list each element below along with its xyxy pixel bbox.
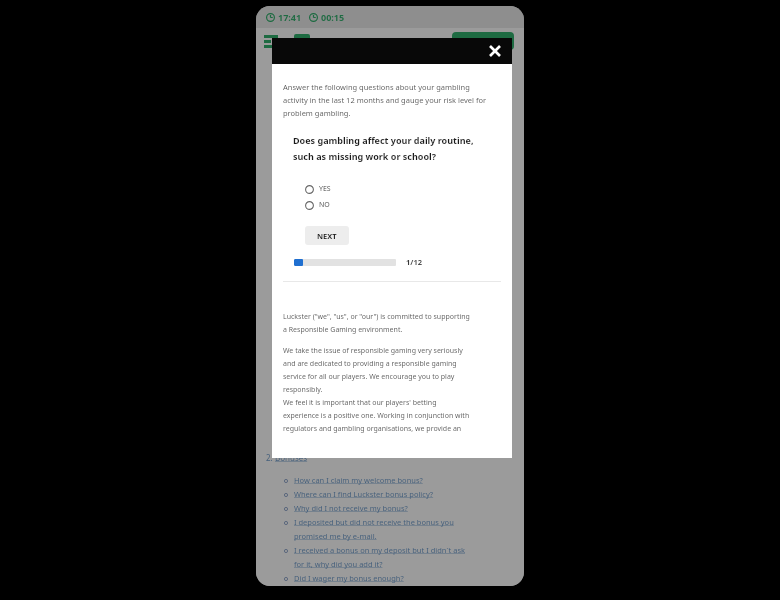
button[interactable]: Where can I find Luckster bonus policy? [266,489,514,499]
staticText: service for all our players. We encourag… [283,372,455,382]
button[interactable]: promised me by e-mail. [266,531,514,541]
staticText: 00:15 [321,11,345,23]
staticText: Answer the following questions about you… [283,82,470,92]
staticText: Did I wager my bonus enough? [294,573,404,583]
staticText: 17:41 [278,11,302,23]
button[interactable]: NO [305,200,330,210]
staticText: 2. [266,452,275,463]
staticText: 1/12 [406,257,422,267]
button[interactable]: I received a bonus on my deposit but I d… [266,545,514,555]
button[interactable]: Close [486,42,504,60]
button[interactable]: How can I claim my welcome bonus? [266,475,514,485]
button[interactable]: I deposited but did not receive the bonu… [266,517,514,527]
staticText: for it, why did you add it? [294,559,383,569]
staticText: Luckster ("we", "us", or "our") is commi… [283,312,470,322]
staticText: promised me by e-mail. [294,531,377,541]
button[interactable]: Menu [264,35,280,51]
staticText: Does gambling affect your daily routine, [293,134,474,146]
staticText: We take the issue of responsible gaming … [283,346,463,356]
staticText: a Responsible Gaming environment. [283,325,403,335]
staticText: experience is a positive one. Working in… [283,411,470,421]
staticText: activity in the last 12 months and gauge… [283,95,487,105]
button[interactable]: Bonuses [275,452,308,463]
staticText: YES [319,184,331,194]
button[interactable]: YES [305,184,331,194]
staticText: such as missing work or school? [293,150,437,162]
staticText: Where can I find Luckster bonus policy? [294,489,434,499]
staticText: NEXT [317,231,337,241]
staticText: problem gambling. [283,108,351,118]
staticText: Why did I not receive my bonus? [294,503,408,513]
staticText: How can I claim my welcome bonus? [294,475,423,485]
button[interactable]: Why did I not receive my bonus? [266,503,514,513]
button[interactable] [452,32,514,50]
staticText: We feel it is important that our players… [283,398,437,408]
staticText: responsibly. [283,385,323,395]
button[interactable]: NEXT [305,226,349,245]
staticText: NO [319,200,330,210]
staticText: Bonuses [275,452,308,463]
button[interactable]: Did I wager my bonus enough? [266,573,514,583]
staticText: I received a bonus on my deposit but I d… [294,545,466,555]
button[interactable]: for it, why did you add it? [266,559,514,569]
staticText: and are dedicated to providing a respons… [283,359,457,369]
staticText: regulators and gambling organisations, w… [283,424,462,434]
staticText: I deposited but did not receive the bonu… [294,517,454,527]
